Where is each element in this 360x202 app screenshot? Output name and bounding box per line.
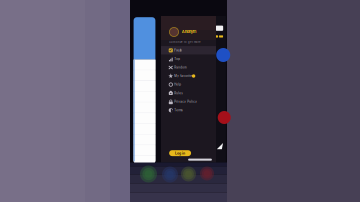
staticText: Help bbox=[174, 83, 181, 86]
staticText: Anonym bbox=[182, 29, 197, 34]
button[interactable]: My favorites bbox=[161, 72, 216, 80]
button[interactable]: Top bbox=[161, 55, 216, 63]
staticText: My favorites bbox=[174, 74, 193, 78]
staticText: Privacy Policy bbox=[174, 100, 197, 103]
button[interactable]: Log in bbox=[169, 150, 191, 156]
button[interactable]: Rules bbox=[161, 89, 216, 97]
button[interactable]: Terms bbox=[161, 106, 216, 114]
staticText: Fresh bbox=[174, 49, 182, 52]
staticText: Top bbox=[174, 57, 180, 61]
button[interactable]: Privacy Policy bbox=[161, 97, 216, 106]
staticText: Authorize to get more bbox=[169, 40, 201, 43]
button[interactable]: Fresh bbox=[161, 46, 216, 55]
staticText: Rules bbox=[174, 91, 182, 95]
staticText: Terms bbox=[174, 108, 182, 112]
button[interactable]: Help bbox=[161, 80, 216, 89]
button[interactable]: Random bbox=[161, 63, 216, 72]
staticText: Log in bbox=[175, 151, 185, 155]
staticText: Random bbox=[174, 66, 186, 69]
